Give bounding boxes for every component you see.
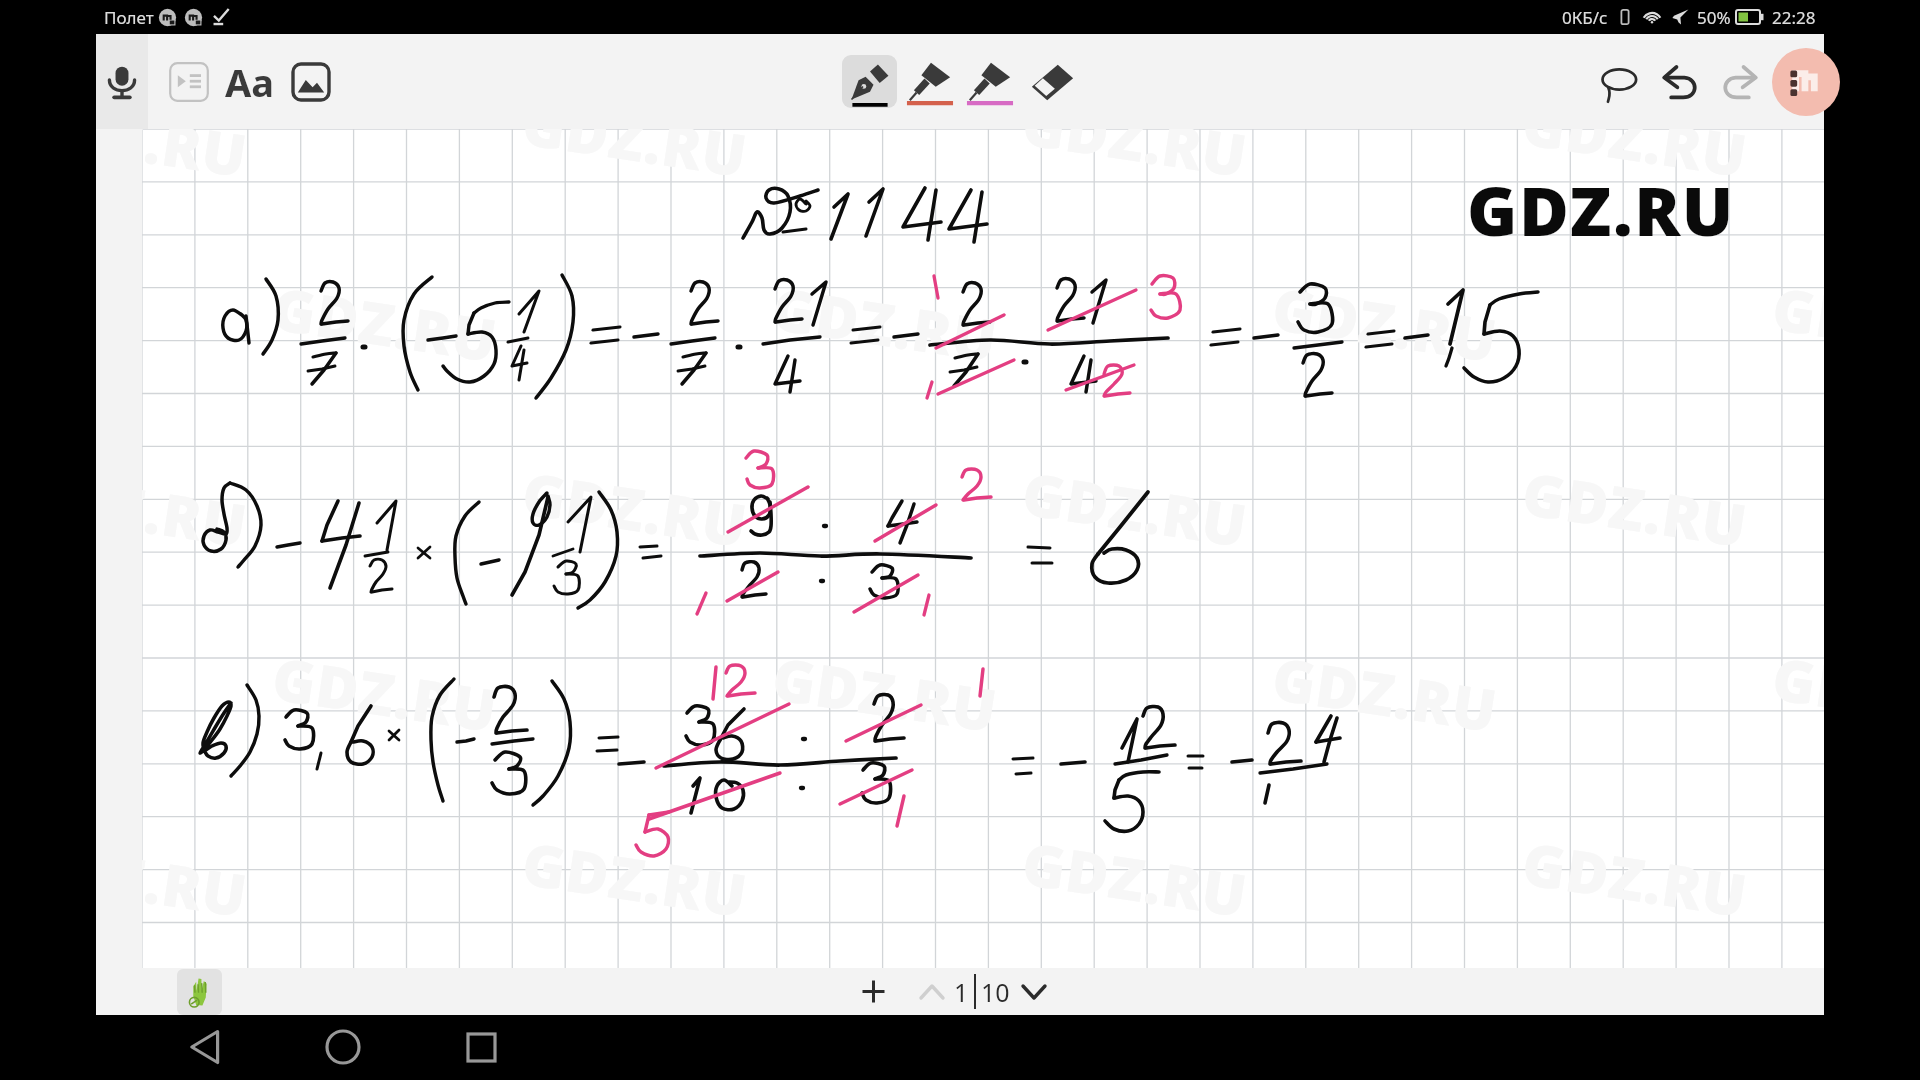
staticText: GDZ.RU xyxy=(1517,453,1754,564)
staticText: GDZ.RU xyxy=(1017,129,1254,194)
staticText: GDZ.RU xyxy=(1017,823,1254,934)
staticText: 0КБ/с xyxy=(1562,6,1608,29)
button[interactable]: Next page xyxy=(1012,968,1056,1015)
staticText: GDZ.RU xyxy=(1517,823,1754,934)
staticText: Aa xyxy=(225,56,275,108)
staticText: GDZ.RU xyxy=(142,129,254,194)
button[interactable]: Recent apps xyxy=(448,1014,514,1080)
button[interactable]: Pen tool xyxy=(842,55,897,108)
staticText: GDZ.RU xyxy=(1767,638,1824,749)
staticText: GDZ.RU xyxy=(1267,638,1504,749)
staticText: GDZ.RU xyxy=(517,453,754,564)
staticText: GDZ.RU xyxy=(1767,268,1824,379)
staticText: 22:28 xyxy=(1772,6,1816,29)
staticText: GDZ.RU xyxy=(767,638,1004,749)
button[interactable]: Voice record xyxy=(96,34,148,129)
button[interactable]: Redo xyxy=(1711,34,1769,129)
button[interactable]: Eraser xyxy=(1020,34,1084,129)
button[interactable]: Back xyxy=(172,1014,238,1080)
staticText: GDZ.RU xyxy=(1517,129,1754,194)
button[interactable]: Undo xyxy=(1651,34,1709,129)
button[interactable]: Lasso select xyxy=(1592,34,1650,129)
staticText: 1 xyxy=(954,975,969,1009)
button[interactable]: Outline xyxy=(161,34,217,129)
staticText: GDZ.RU xyxy=(517,823,754,934)
button[interactable]: Insert image xyxy=(283,34,339,129)
staticText: GDZ.RU xyxy=(1467,163,1735,256)
staticText: GDZ.RU xyxy=(1267,268,1504,379)
staticText: Полет xyxy=(104,6,154,29)
staticText: GDZ.RU xyxy=(267,638,504,749)
staticText: GDZ.RU xyxy=(767,268,1004,379)
staticText: GDZ.RU xyxy=(517,129,754,194)
staticText: GDZ.RU xyxy=(1017,453,1254,564)
staticText: 10 xyxy=(981,975,1010,1009)
staticText: GDZ.RU xyxy=(142,453,254,564)
staticText: 50% xyxy=(1697,6,1731,29)
button[interactable]: Home xyxy=(310,1014,376,1080)
staticText: GDZ.RU xyxy=(267,268,504,379)
staticText: GDZ.RU xyxy=(142,823,254,934)
button[interactable]: Pink marker xyxy=(958,34,1022,129)
button[interactable]: Red marker xyxy=(898,34,962,129)
button[interactable]: Add page xyxy=(849,968,897,1015)
button[interactable]: Text style xyxy=(222,34,278,129)
button[interactable]: Account xyxy=(1772,48,1840,116)
button[interactable]: Previous page xyxy=(910,968,954,1015)
button[interactable]: Hand tool xyxy=(177,969,222,1015)
